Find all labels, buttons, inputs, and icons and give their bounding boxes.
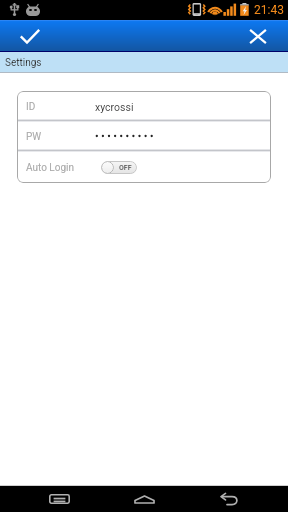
- button[interactable]: Done: [0, 20, 60, 52]
- button[interactable]: Back: [170, 486, 288, 512]
- button[interactable]: Home: [118, 486, 170, 512]
- button[interactable]: Recent apps: [0, 486, 118, 512]
- staticText: ID: [26, 101, 95, 113]
- button[interactable]: PW: [17, 122, 271, 149]
- staticText: Settings: [5, 57, 42, 69]
- staticText: PW: [26, 131, 95, 143]
- button[interactable]: Auto Login: [17, 152, 271, 183]
- staticText: xycrossi: [95, 101, 134, 113]
- button[interactable]: Auto Login toggle, off: [101, 161, 137, 174]
- staticText: OFF: [119, 164, 132, 172]
- button[interactable]: ID: [17, 91, 271, 119]
- staticText: 21:43: [254, 3, 284, 17]
- button[interactable]: Cancel: [228, 20, 288, 52]
- staticText: Auto Login: [26, 162, 95, 174]
